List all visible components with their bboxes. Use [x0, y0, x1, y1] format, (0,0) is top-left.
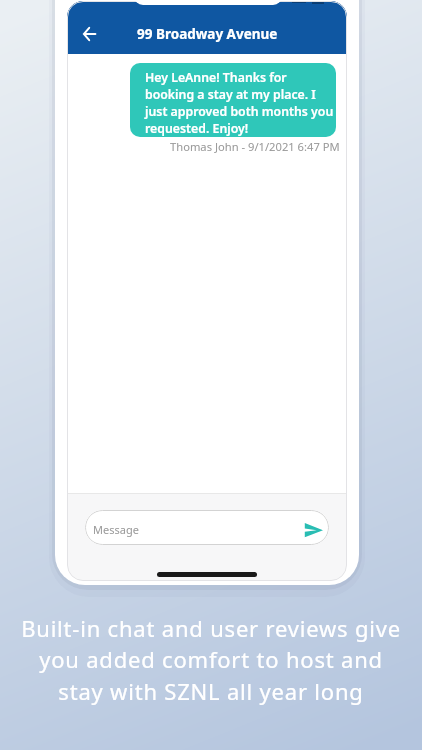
staticText: 99 Broadway Avenue [137, 25, 278, 43]
button[interactable]: Message [85, 510, 329, 545]
button[interactable] [69, 14, 109, 54]
staticText: Thomas John - 9/1/2021 6:47 PM [170, 139, 340, 154]
staticText: Built-in chat and user reviews give you … [0, 613, 422, 707]
staticText: Message [93, 522, 139, 537]
button[interactable]: Hey LeAnne! Thanks for booking a stay at… [130, 63, 336, 137]
staticText: Hey LeAnne! Thanks for booking a stay at… [145, 69, 334, 137]
button[interactable] [298, 513, 328, 543]
